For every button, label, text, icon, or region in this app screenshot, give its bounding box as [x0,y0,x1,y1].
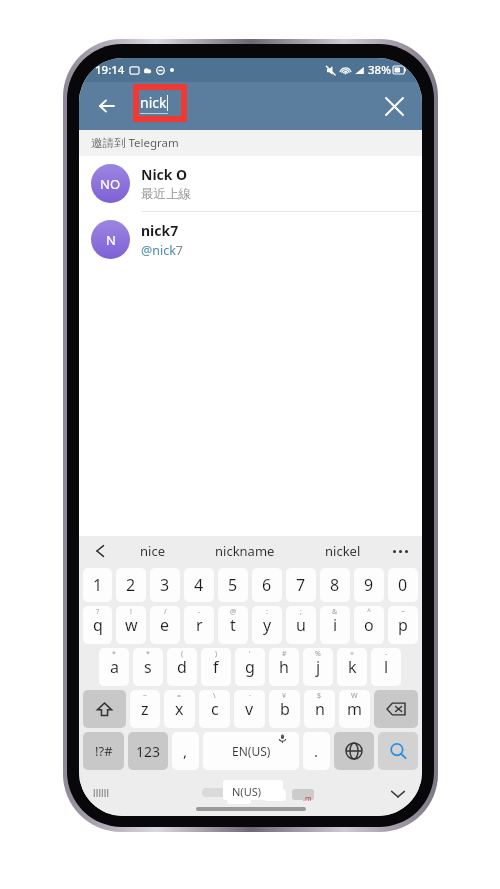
button[interactable]: 8 [320,568,350,602]
staticText: t [230,614,236,636]
staticText: 最近上線 [141,186,191,202]
button[interactable]: d [167,648,197,686]
button[interactable]: Back [87,86,127,126]
staticText: ; [300,607,302,617]
button[interactable]: n [304,690,335,728]
staticText: f [213,656,219,678]
button[interactable]: 0 [388,568,418,602]
staticText: s [144,656,152,678]
staticText: N [106,231,116,249]
staticText: 2 [126,574,136,596]
staticText: p [398,614,408,636]
button[interactable]: 3 [150,568,180,602]
staticText: $ [317,691,322,701]
staticText: j [316,656,321,678]
button[interactable]: Shift [83,690,126,728]
staticText: · [249,691,251,701]
staticText: 4 [194,574,204,596]
button[interactable]: z [130,690,160,728]
staticText: n [315,698,325,720]
staticText: b [280,698,290,720]
staticText: * [112,649,116,659]
staticText: ? [96,607,100,617]
button[interactable]: r [184,606,214,644]
staticText: o [364,614,374,636]
button[interactable]: l [371,648,401,686]
button[interactable]: 1 [83,568,112,602]
staticText: x [175,698,184,720]
staticText: nickel [325,542,361,560]
button[interactable]: o [354,606,384,644]
button[interactable]: Backspace [374,690,418,728]
button[interactable]: 9 [354,568,384,602]
button[interactable]: N [79,212,422,267]
button[interactable]: p [388,606,418,644]
staticText: % [315,649,321,659]
button[interactable]: b [269,690,300,728]
staticText: NO [100,175,121,193]
button[interactable]: nice [136,539,169,563]
button[interactable]: t [218,606,248,644]
button[interactable]: i [320,606,350,644]
button[interactable]: e [150,606,180,644]
button[interactable]: 7 [286,568,316,602]
button[interactable]: x [164,690,195,728]
button[interactable]: More suggestions [390,541,410,561]
staticText: ~ [401,607,406,617]
button[interactable]: 6 [252,568,282,602]
staticText: nice [140,542,165,560]
button[interactable]: 4 [184,568,214,602]
staticText: ' [249,649,251,659]
button[interactable]: w [116,606,146,644]
button[interactable]: NO [79,156,422,211]
button[interactable]: s [133,648,163,686]
button[interactable]: q [83,606,112,644]
staticText: + [350,649,355,659]
button[interactable]: 5 [218,568,248,602]
button[interactable]: y [252,606,282,644]
button[interactable]: a [99,648,129,686]
button[interactable]: Search [378,732,418,770]
button[interactable]: h [269,648,299,686]
staticText: 38% [368,62,391,78]
button[interactable]: EN(US) [203,732,299,770]
staticText: 5 [228,574,238,596]
button[interactable]: c [199,690,230,728]
staticText: nick [140,93,167,112]
staticText: * [146,649,150,659]
button[interactable]: g [235,648,265,686]
staticText: u [296,614,306,636]
button[interactable]: nickname [211,539,279,563]
staticText: a [110,656,119,678]
button[interactable]: 2 [116,568,146,602]
staticText: ^ [367,607,372,617]
staticText: 7 [296,574,306,596]
staticText: h [279,656,289,678]
staticText: nickname [215,542,275,560]
staticText: 19:14 [95,62,125,78]
button[interactable]: !?# [83,732,124,770]
button[interactable]: . [303,732,330,770]
button[interactable]: 123 [128,732,168,770]
staticText: z [141,698,149,720]
staticText: @ [230,607,237,617]
button[interactable]: v [234,690,265,728]
staticText: : [266,607,268,617]
staticText: ) [215,649,218,659]
button[interactable]: Change language [334,732,374,770]
button[interactable]: u [286,606,316,644]
staticText: , [183,741,188,761]
button[interactable]: f [201,648,231,686]
button[interactable]: j [303,648,333,686]
button[interactable]: nickel [321,539,365,563]
button[interactable]: Clear search [374,86,414,126]
staticText: 1 [93,574,103,596]
button[interactable]: , [172,732,199,770]
button[interactable]: m [339,690,370,728]
staticText: 邀請到 Telegram [91,135,179,151]
staticText: d [177,656,187,678]
staticText: ~ [143,691,148,701]
staticText: - [198,607,201,617]
button[interactable]: k [337,648,367,686]
staticText: . [314,741,319,761]
